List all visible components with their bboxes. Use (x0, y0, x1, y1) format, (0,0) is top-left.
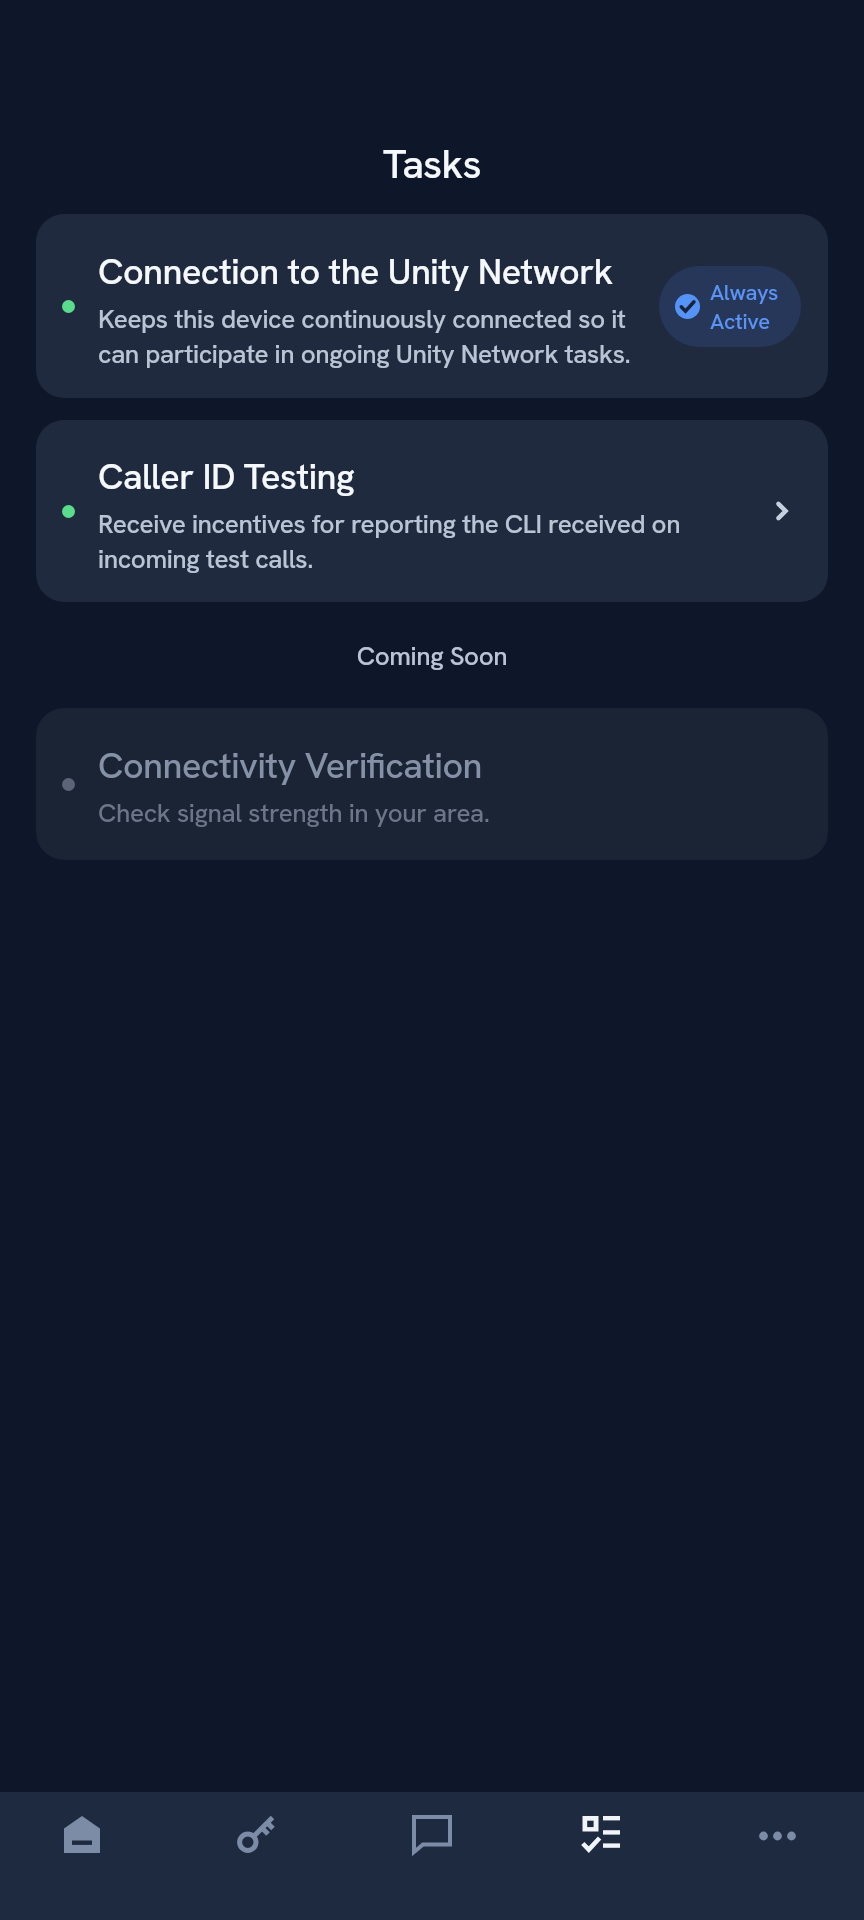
button[interactable]: Tasks (518, 1792, 691, 1920)
button[interactable]: More (691, 1792, 864, 1920)
staticText: Coming Soon (0, 639, 864, 673)
staticText: Always Active (710, 278, 779, 336)
staticText: Connection to the Unity Network (98, 248, 613, 295)
staticText: Tasks (0, 138, 864, 190)
staticText: Keeps this device continuously connected… (98, 302, 658, 371)
button[interactable]: Keys (172, 1792, 345, 1920)
button[interactable]: Always Active (659, 266, 801, 347)
staticText: Receive incentives for reporting the CLI… (98, 507, 738, 576)
button[interactable]: Messages (345, 1792, 518, 1920)
staticText: Connectivity Verification (98, 742, 483, 789)
other: Open Caller ID Testing (764, 496, 794, 526)
button[interactable]: Home (0, 1792, 172, 1920)
button[interactable]: Connection to the Unity Network (36, 214, 828, 398)
button[interactable]: Caller ID Testing (36, 420, 828, 602)
button[interactable]: Connectivity Verification (36, 708, 828, 860)
staticText: Check signal strength in your area. (98, 796, 490, 830)
staticText: Caller ID Testing (98, 453, 355, 500)
